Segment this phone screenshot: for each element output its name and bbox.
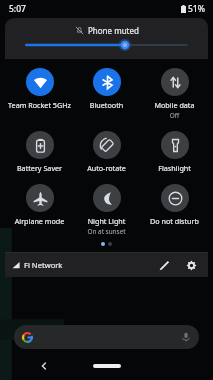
button[interactable]: Fi Network: [12, 257, 63, 273]
staticText: Bluetooth: [73, 100, 140, 110]
staticText: Phone muted: [88, 25, 139, 36]
staticText: Night Light: [73, 216, 140, 226]
button[interactable]: Battery Saver: [6, 129, 73, 175]
staticText: 5:07: [9, 3, 26, 15]
button[interactable]: Auto-rotate: [73, 129, 140, 175]
staticText: Airplane mode: [6, 216, 73, 226]
staticText: Battery Saver: [6, 163, 73, 173]
staticText: 51%: [188, 3, 205, 15]
button[interactable]: Settings: [181, 255, 201, 275]
button[interactable]: Team Rocket 5GHz: [6, 66, 73, 112]
staticText: Auto-rotate: [73, 163, 140, 173]
staticText: Flashlight: [141, 163, 208, 173]
button[interactable]: Edit tiles: [154, 255, 174, 275]
button[interactable]: Back: [36, 358, 52, 374]
button[interactable]: [14, 325, 199, 349]
button[interactable]: Flashlight: [141, 129, 208, 175]
staticText: Do not disturb: [141, 216, 208, 226]
button[interactable]: Do not disturb: [141, 182, 208, 228]
staticText: Mobile data: [141, 100, 208, 110]
staticText: On at sunset: [73, 227, 140, 236]
button[interactable]: Bluetooth: [73, 66, 140, 112]
button[interactable]: Night Light: [73, 182, 140, 238]
staticText: Fi Network: [24, 260, 63, 270]
button[interactable]: Home: [93, 364, 121, 368]
button[interactable]: Airplane mode: [6, 182, 73, 228]
button[interactable]: [5, 39, 208, 51]
staticText: Team Rocket 5GHz: [6, 100, 73, 110]
button[interactable]: Mobile data: [141, 66, 208, 122]
staticText: Off: [141, 111, 208, 120]
